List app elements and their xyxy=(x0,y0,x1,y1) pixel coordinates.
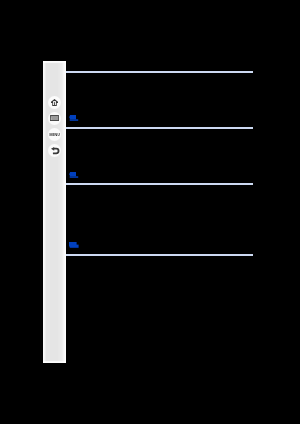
button[interactable]: Link xyxy=(69,115,80,122)
button[interactable]: Link xyxy=(69,172,80,179)
staticText: MENU xyxy=(49,132,60,137)
button[interactable]: Menu xyxy=(48,128,61,141)
button[interactable]: Home xyxy=(48,96,61,109)
button[interactable]: Back xyxy=(48,144,61,157)
button[interactable]: Recent apps xyxy=(48,112,61,125)
button[interactable]: Link xyxy=(69,242,80,249)
